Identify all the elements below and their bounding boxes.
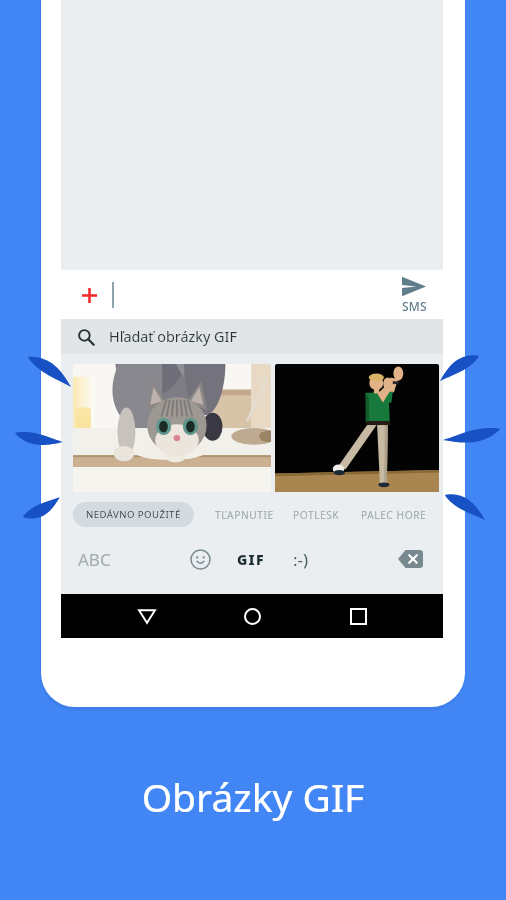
button[interactable]: PALEC HORE: [359, 502, 429, 527]
staticText: ABC: [78, 548, 111, 571]
button[interactable]: Dancing man GIF: [275, 364, 439, 492]
button[interactable]: Emoji keyboard: [185, 544, 215, 574]
staticText: TĽAPNUTIE: [215, 508, 274, 521]
button[interactable]: ABC: [75, 542, 114, 577]
staticText: Obrázky GIF: [0, 770, 506, 823]
staticText: PALEC HORE: [361, 508, 427, 521]
button[interactable]: Cat GIF: [73, 364, 271, 492]
button[interactable]: GIF: [234, 544, 268, 575]
button[interactable]: Recent apps: [338, 596, 378, 636]
button[interactable]: Backspace: [391, 540, 429, 578]
staticText: NEDÁVNO POUŽITÉ: [86, 508, 181, 521]
button[interactable]: Hľadať obrázky GIF: [61, 319, 443, 354]
staticText: SMS: [402, 298, 427, 314]
button[interactable]: POTLESK: [291, 502, 342, 527]
staticText: Hľadať obrázky GIF: [109, 327, 237, 347]
button[interactable]: Send SMS: [386, 275, 442, 314]
button[interactable]: :-): [290, 542, 312, 577]
staticText: GIF: [237, 550, 265, 569]
button[interactable]: Home: [232, 596, 272, 636]
staticText: :-): [293, 548, 309, 571]
button[interactable]: Add attachment: [75, 274, 103, 316]
button[interactable]: TĽAPNUTIE: [213, 502, 276, 527]
button[interactable]: NEDÁVNO POUŽITÉ: [73, 502, 194, 527]
button[interactable]: Back: [127, 596, 167, 636]
staticText: POTLESK: [293, 508, 340, 521]
